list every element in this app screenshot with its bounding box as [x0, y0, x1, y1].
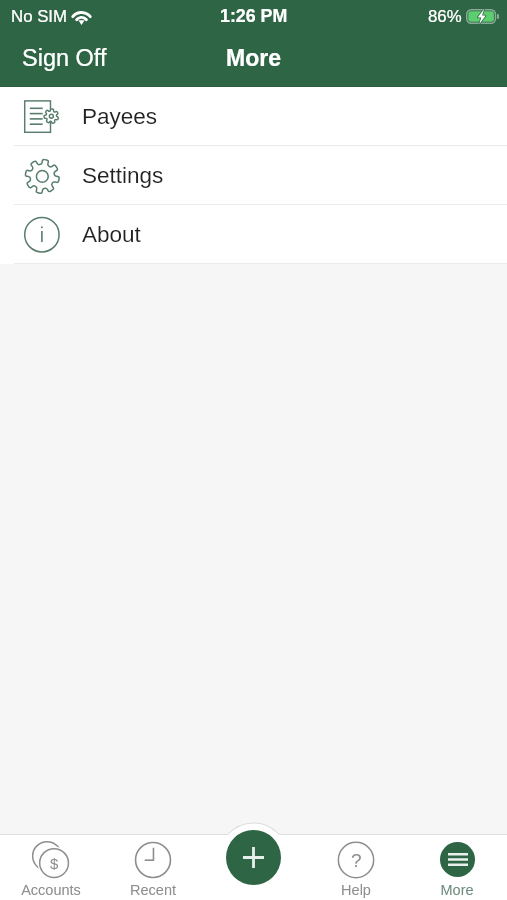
staticText: 1:26 PM [220, 6, 288, 26]
staticText: Settings [82, 163, 164, 188]
button[interactable]: ? [305, 834, 406, 900]
staticText: Payees [82, 104, 158, 129]
staticText: 86% [428, 7, 462, 26]
staticText: Help [341, 882, 371, 898]
staticText: More [440, 882, 474, 898]
button[interactable]: More [406, 834, 507, 900]
button[interactable]: Payees [0, 87, 507, 145]
button[interactable]: About [0, 205, 507, 263]
staticText: Sign Off [22, 45, 107, 71]
staticText: Accounts [21, 882, 81, 898]
staticText: Recent [130, 882, 176, 898]
button[interactable]: Add [226, 830, 281, 885]
button[interactable]: Settings [0, 146, 507, 204]
staticText: $ [50, 855, 59, 872]
staticText: ? [351, 850, 362, 871]
button[interactable]: $ [0, 834, 102, 900]
staticText: No SIM [11, 7, 68, 26]
button[interactable]: Sign Off [0, 39, 123, 87]
button[interactable]: Recent [102, 834, 204, 900]
staticText: More [226, 45, 281, 71]
staticText: About [82, 222, 141, 247]
